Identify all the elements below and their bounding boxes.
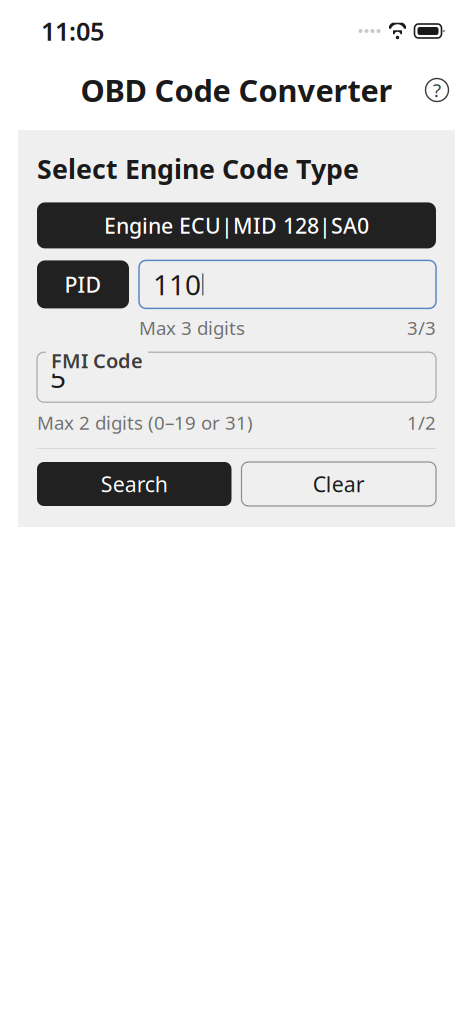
staticText: Max 2 digits (0–19 or 31) [37,410,253,435]
staticText: 11:05 [41,14,104,48]
button[interactable]: PID [37,260,129,308]
staticText: 110 [153,266,201,303]
button[interactable]: 110 [139,260,436,308]
staticText: 3/3 [407,315,436,340]
staticText: PID [64,270,101,298]
button[interactable]: Help [415,68,459,112]
button[interactable]: 5 [37,352,436,402]
staticText: FMI Code [51,347,143,374]
button[interactable]: Search [37,462,231,506]
button[interactable]: Clear [241,462,436,506]
staticText: ? [433,78,441,102]
staticText: Select Engine Code Type [37,151,359,186]
staticText: 1/2 [407,410,436,435]
staticText: 5 [50,359,66,396]
staticText: Engine ECU|MID 128|SA0 [104,211,369,239]
staticText: OBD Code Converter [80,70,392,110]
staticText: Clear [313,470,365,498]
staticText: Max 3 digits [139,315,245,340]
button[interactable]: Engine ECU|MID 128|SA0 [37,202,436,248]
staticText: Search [101,470,168,498]
